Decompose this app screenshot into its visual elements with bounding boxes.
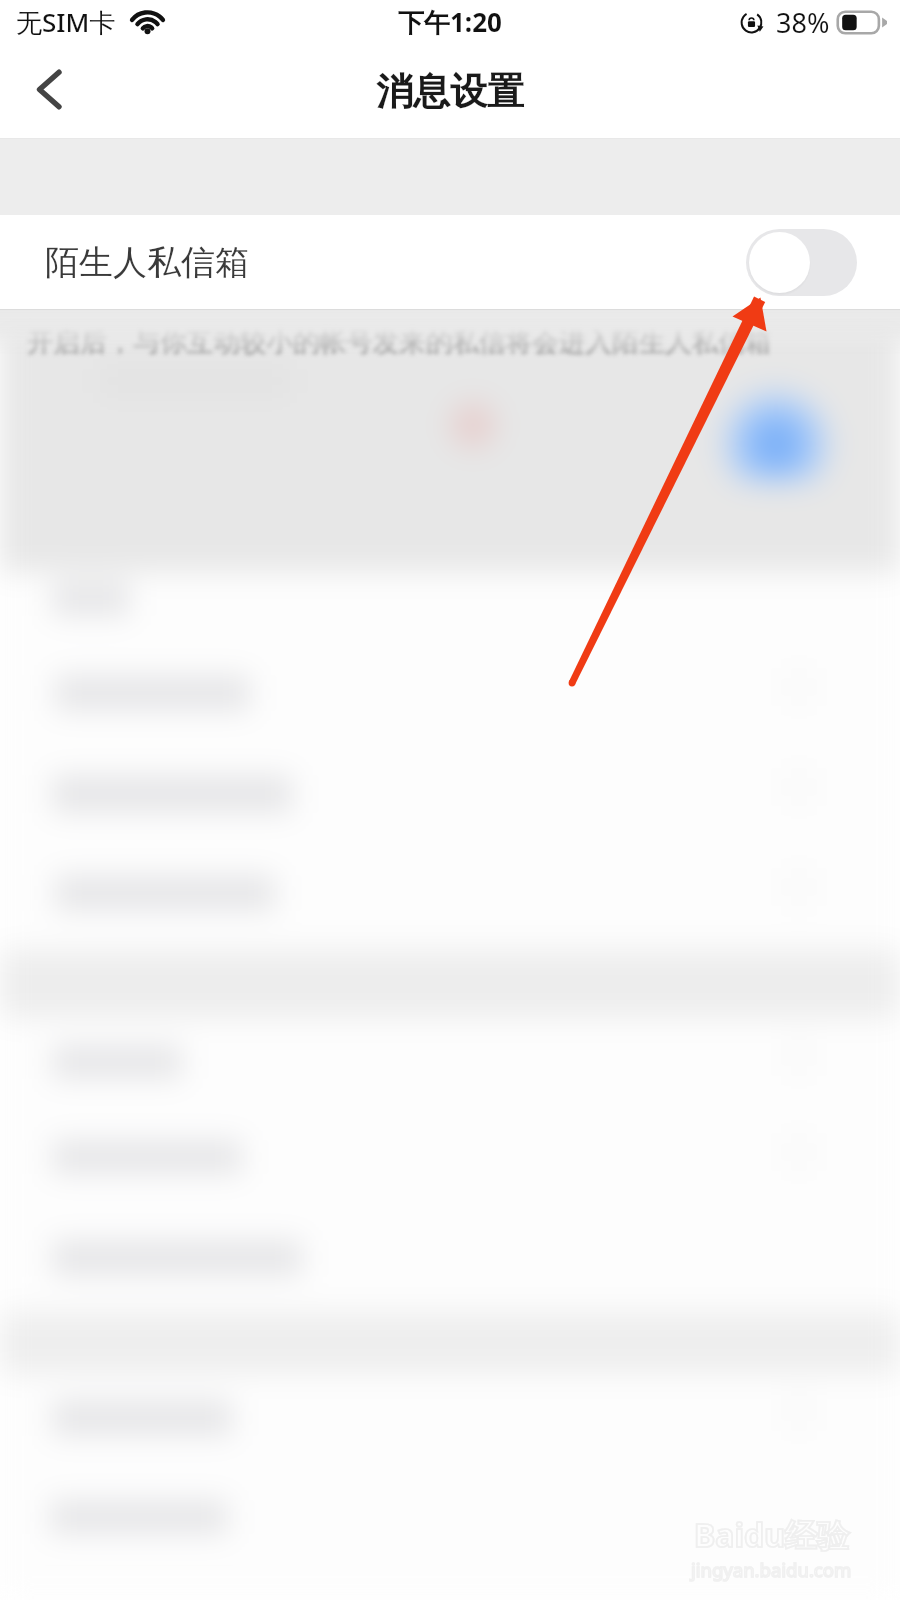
staticText: 开启后，与你互动较小的帐号发来的私信将会进入陌生人私信箱 xyxy=(27,325,772,359)
staticText: jingyan.baidu.com xyxy=(691,1557,852,1582)
button[interactable]: Stranger inbox switch, off xyxy=(746,229,857,296)
staticText: 38% xyxy=(776,4,830,41)
staticText: 下午1:20 xyxy=(398,4,502,40)
button[interactable]: Back xyxy=(0,44,98,139)
staticText: 陌生人私信箱 xyxy=(45,241,249,284)
staticText: 无SIM卡 xyxy=(16,4,116,40)
button[interactable]: 陌生人私信箱 xyxy=(0,215,900,310)
staticText: Baidu经验 xyxy=(694,1513,850,1557)
staticText: 消息设置 xyxy=(376,68,524,115)
